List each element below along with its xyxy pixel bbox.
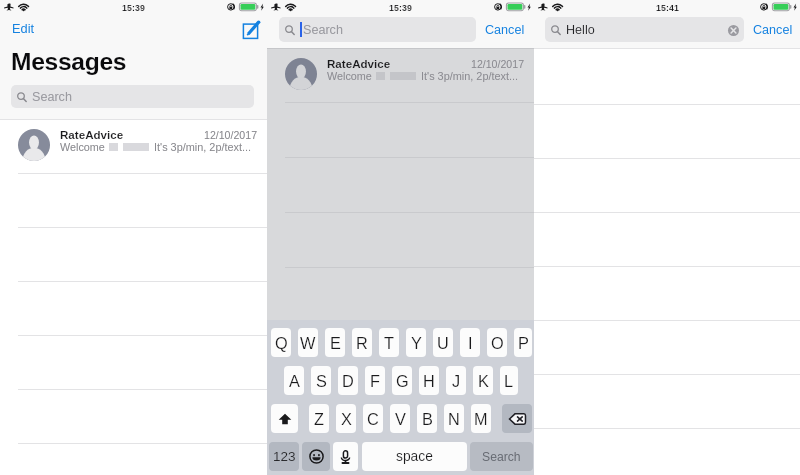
staticText: Y [411, 334, 422, 352]
staticText: 15:41 [656, 3, 679, 13]
staticText: Edit [12, 21, 35, 35]
staticText: G [396, 372, 409, 390]
button[interactable]: U [433, 328, 453, 357]
button[interactable]: RateAdvice [0, 120, 267, 173]
staticText: Q [275, 334, 288, 352]
staticText: M [474, 410, 488, 428]
button[interactable]: N [444, 404, 464, 433]
button[interactable]: X [336, 404, 356, 433]
staticText: Messages [11, 48, 127, 75]
button[interactable]: R [352, 328, 372, 357]
button[interactable]: K [473, 366, 493, 395]
staticText: Search [303, 23, 343, 37]
staticText: V [395, 410, 406, 428]
staticText: Cancel [753, 23, 793, 37]
button[interactable]: Search [11, 85, 254, 108]
staticText: H [423, 372, 435, 390]
staticText: X [341, 410, 352, 428]
staticText: Cancel [485, 23, 525, 37]
button[interactable]: Edit [12, 21, 35, 35]
staticText: 15:39 [389, 3, 412, 13]
staticText: B [422, 410, 433, 428]
staticText: Z [314, 410, 324, 428]
button[interactable]: F [365, 366, 385, 395]
staticText: S [316, 372, 327, 390]
button[interactable]: V [390, 404, 410, 433]
button[interactable]: Hello [545, 17, 744, 42]
button[interactable]: Cancel [485, 23, 525, 37]
button[interactable]: A [284, 366, 304, 395]
button[interactable]: Search [279, 17, 476, 42]
staticText: T [384, 334, 394, 352]
button[interactable]: Z [309, 404, 329, 433]
staticText: RateAdvice [60, 128, 124, 141]
staticText: A [289, 372, 300, 390]
button[interactable]: D [338, 366, 358, 395]
button[interactable]: Search [470, 442, 533, 471]
staticText: D [342, 372, 354, 390]
staticText: E [330, 334, 341, 352]
button[interactable]: L [500, 366, 518, 395]
staticText: O [491, 334, 504, 352]
staticText: It's 3p/min, 2p/text... [421, 70, 519, 82]
staticText: R [356, 334, 368, 352]
staticText: I [468, 334, 473, 352]
staticText: L [504, 372, 514, 390]
staticText: RateAdvice [327, 57, 391, 70]
button[interactable]: G [392, 366, 412, 395]
button[interactable]: I [460, 328, 480, 357]
staticText: It's 3p/min, 2p/text... [154, 141, 252, 153]
staticText: Welcome [327, 70, 372, 82]
button[interactable]: RateAdvice [267, 49, 534, 102]
button[interactable]: Emoji [302, 442, 330, 471]
button[interactable]: P [514, 328, 532, 357]
staticText: Welcome [60, 141, 105, 153]
button[interactable]: Shift [271, 404, 298, 433]
button[interactable]: space [362, 442, 467, 471]
button[interactable]: W [298, 328, 318, 357]
button[interactable]: C [363, 404, 383, 433]
button[interactable]: S [311, 366, 331, 395]
staticText: 12/10/2017 [204, 129, 258, 141]
staticText: 12/10/2017 [471, 58, 525, 70]
staticText: P [518, 334, 529, 352]
button[interactable]: Y [406, 328, 426, 357]
staticText: F [370, 372, 380, 390]
button[interactable]: E [325, 328, 345, 357]
staticText: N [448, 410, 460, 428]
staticText: J [452, 372, 461, 390]
staticText: U [437, 334, 449, 352]
staticText: space [396, 449, 433, 464]
button[interactable]: Cancel [753, 23, 793, 37]
staticText: Hello [566, 23, 595, 37]
button[interactable]: 123 [269, 442, 299, 471]
staticText: 123 [273, 449, 296, 464]
staticText: 15:39 [122, 3, 145, 13]
button[interactable]: Q [271, 328, 291, 357]
staticText: Search [482, 450, 521, 464]
button[interactable]: Dictation [333, 442, 358, 471]
staticText: K [478, 372, 489, 390]
staticText: W [300, 334, 316, 352]
button[interactable]: O [487, 328, 507, 357]
button[interactable]: T [379, 328, 399, 357]
button[interactable]: J [446, 366, 466, 395]
button[interactable]: Delete [502, 404, 532, 433]
staticText: Search [32, 90, 72, 104]
button[interactable]: H [419, 366, 439, 395]
button[interactable]: B [417, 404, 437, 433]
button[interactable]: M [471, 404, 491, 433]
button[interactable]: New message [241, 20, 260, 39]
staticText: C [367, 410, 379, 428]
